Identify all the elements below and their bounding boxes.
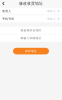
button[interactable]: 请输入详细地址 — [0, 34, 62, 42]
staticText: 保存地址 — [25, 49, 37, 53]
button[interactable]: 保存地址 — [13, 48, 49, 54]
staticText: 手机号码 — [2, 17, 14, 21]
staticText: 修改收货地址 — [19, 1, 43, 6]
button[interactable]: 收货人 — [0, 7, 62, 15]
button[interactable]: 手机号码 — [0, 15, 62, 23]
button[interactable]: 请选择所在地区 — [0, 27, 62, 34]
staticText: 请输入详细地址 — [20, 36, 41, 40]
button[interactable]: Back — [0, 0, 7, 7]
staticText: 请输入 — [47, 9, 56, 13]
staticText: 请选择所在地区 — [20, 29, 41, 32]
staticText: 收货人 — [2, 9, 11, 13]
staticText: 请输入 — [47, 17, 56, 21]
